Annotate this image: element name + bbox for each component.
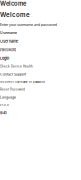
staticText: Reset Password bbox=[0, 88, 25, 91]
staticText: Contact Support bbox=[0, 72, 26, 76]
staticText: Username bbox=[0, 31, 17, 35]
staticText: Check Device Health bbox=[0, 65, 33, 68]
staticText: 9:41 bbox=[0, 111, 7, 115]
staticText: Language bbox=[0, 95, 16, 99]
staticText: Enter your username and password bbox=[0, 22, 57, 27]
staticText: Welcome bbox=[0, 0, 26, 7]
staticText: Welcome bbox=[0, 11, 30, 18]
staticText: Incorrect username or password bbox=[0, 80, 45, 84]
staticText: v 1.0.0 bbox=[0, 103, 9, 106]
staticText: Username bbox=[0, 39, 18, 44]
staticText: Login bbox=[0, 56, 9, 61]
staticText: Password bbox=[0, 48, 16, 52]
